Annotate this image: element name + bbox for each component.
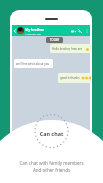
button[interactable]: well fine what about you — [14, 59, 53, 68]
staticText: Can chat with family members — [0, 160, 103, 166]
button[interactable]: Hello brother, how are you — [50, 44, 91, 53]
button[interactable]: Back — [13, 29, 17, 33]
staticText: 2 minutes ago — [25, 32, 42, 35]
staticText: well fine what about you — [16, 62, 50, 66]
button[interactable]: More options — [84, 28, 89, 33]
staticText: good it thanks — [60, 76, 81, 80]
button[interactable]: good it thanks — [58, 73, 91, 83]
staticText: My brother — [25, 27, 44, 32]
staticText: TODAY — [46, 38, 63, 42]
button[interactable]: Video call — [70, 28, 76, 34]
button[interactable]: Call — [77, 28, 83, 34]
staticText: And other friends — [0, 167, 103, 173]
staticText: Can chat — [0, 130, 103, 137]
staticText: Hello brother, how are you — [52, 47, 86, 51]
